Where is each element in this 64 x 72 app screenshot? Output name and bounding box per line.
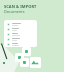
staticText: SCAN & IMPORT	[4, 4, 37, 9]
button[interactable]	[4, 22, 37, 27]
button[interactable]	[4, 32, 37, 37]
button[interactable]	[4, 42, 37, 47]
button[interactable]	[4, 37, 37, 42]
button[interactable]	[4, 27, 37, 32]
staticText: Documents	[4, 9, 25, 14]
